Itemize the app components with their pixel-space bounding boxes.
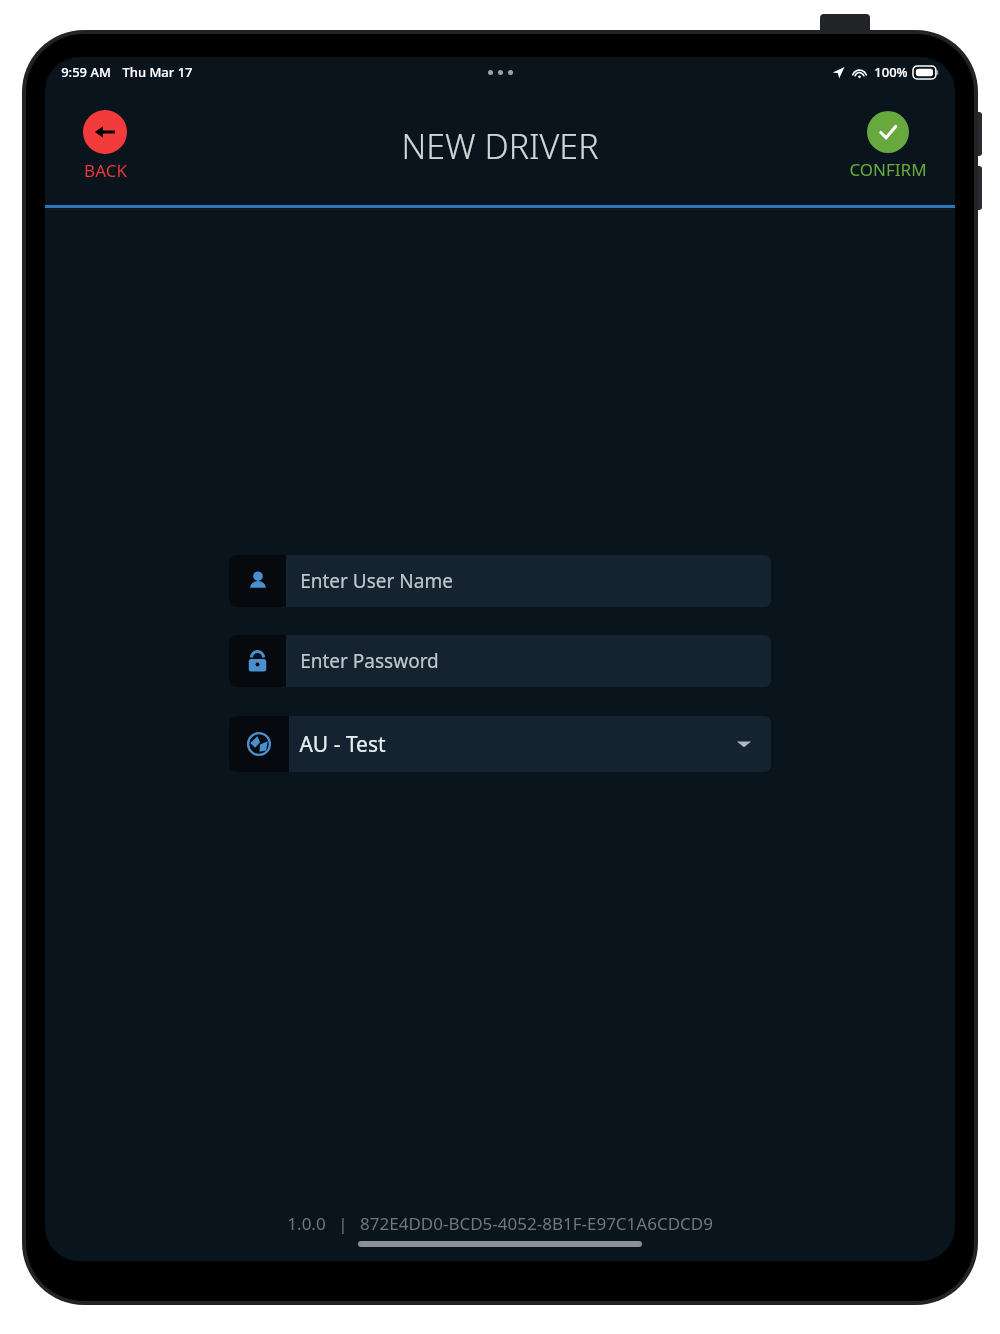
staticText: BACK <box>84 159 127 182</box>
staticText: NEW DRIVER <box>401 123 599 169</box>
staticText: | <box>338 1212 348 1235</box>
button[interactable]: BACK <box>75 106 135 186</box>
staticText: 1.0.0 <box>287 1212 326 1235</box>
staticText: 872E4DD0-BCD5-4052-8B1F-E97C1A6CDCD9 <box>360 1212 713 1235</box>
staticText: Enter Password <box>300 648 439 674</box>
button[interactable]: Enter User Name <box>229 555 771 607</box>
staticText: Thu Mar 17 <box>122 63 193 81</box>
staticText: CONFIRM <box>849 158 927 181</box>
button[interactable]: AU - Test <box>229 716 771 772</box>
staticText: Enter User Name <box>300 568 453 594</box>
button[interactable]: Enter Password <box>229 635 771 687</box>
staticText: 100% <box>874 63 908 81</box>
staticText: AU - Test <box>299 730 386 759</box>
staticText: 9:59 AM <box>61 63 111 81</box>
button[interactable]: CONFIRM <box>841 107 935 185</box>
